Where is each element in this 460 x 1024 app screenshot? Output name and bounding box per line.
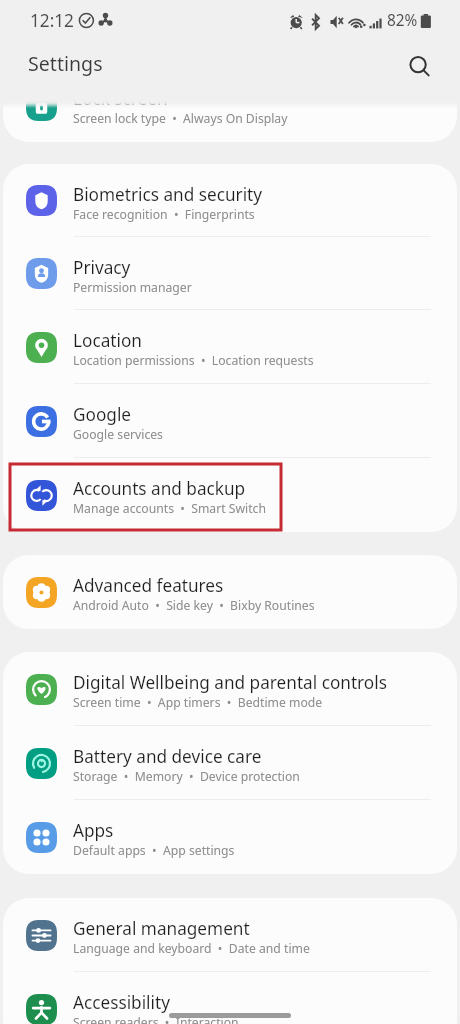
button[interactable]: Apps bbox=[3, 800, 457, 874]
button[interactable]: Battery and device care bbox=[3, 726, 457, 800]
staticText: Permission manager bbox=[73, 279, 192, 296]
staticText: Android Auto • Side key • Bixby Routines bbox=[73, 597, 315, 614]
staticText: 82% bbox=[387, 10, 418, 31]
staticText: Storage • Memory • Device protection bbox=[73, 768, 300, 785]
staticText: Privacy bbox=[73, 256, 131, 279]
button[interactable]: Accessibility bbox=[3, 972, 457, 1024]
staticText: Location permissions • Location requests bbox=[73, 352, 314, 369]
staticText: Default apps • App settings bbox=[73, 842, 235, 859]
staticText: Screen readers • Interaction bbox=[73, 1014, 239, 1024]
staticText: Battery and device care bbox=[73, 745, 262, 768]
staticText: Accounts and backup bbox=[73, 477, 246, 500]
staticText: Screen time • App timers • Bedtime mode bbox=[73, 694, 323, 711]
staticText: Face recognition • Fingerprints bbox=[73, 206, 255, 223]
button[interactable]: Accounts and backup bbox=[3, 458, 457, 532]
staticText: Location bbox=[73, 329, 142, 352]
staticText: Settings bbox=[28, 50, 103, 77]
staticText: Lock screen bbox=[73, 90, 168, 110]
staticText: Screen lock type • Always On Display bbox=[73, 110, 288, 127]
staticText: Biometrics and security bbox=[73, 183, 263, 206]
button[interactable]: Search bbox=[398, 45, 442, 89]
staticText: 12:12 bbox=[30, 9, 74, 32]
staticText: Apps bbox=[73, 819, 114, 842]
button[interactable]: Privacy bbox=[3, 237, 457, 310]
button[interactable]: Advanced features bbox=[3, 555, 457, 629]
staticText: Accessibility bbox=[73, 991, 170, 1014]
staticText: General management bbox=[73, 917, 250, 940]
staticText: Language and keyboard • Date and time bbox=[73, 940, 310, 957]
button[interactable]: Lock screen bbox=[3, 90, 457, 142]
staticText: Google services bbox=[73, 426, 163, 443]
staticText: Manage accounts • Smart Switch bbox=[73, 500, 266, 517]
staticText: Google bbox=[73, 403, 132, 426]
button[interactable]: Location bbox=[3, 310, 457, 384]
button[interactable]: Digital Wellbeing and parental controls bbox=[3, 652, 457, 726]
button[interactable]: General management bbox=[3, 898, 457, 972]
button[interactable]: Google bbox=[3, 384, 457, 458]
staticText: Digital Wellbeing and parental controls bbox=[73, 671, 387, 694]
button[interactable]: Biometrics and security bbox=[3, 164, 457, 237]
staticText: Advanced features bbox=[73, 574, 224, 597]
